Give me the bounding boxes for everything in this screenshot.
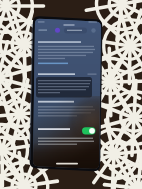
button[interactable]: Read more link: [38, 61, 68, 66]
button[interactable]: Information card: [36, 77, 92, 98]
button[interactable]: More options: [91, 27, 97, 34]
button[interactable]: Optimised battery usage switch, on: [36, 125, 96, 136]
button[interactable]: Account chip: [64, 27, 88, 34]
